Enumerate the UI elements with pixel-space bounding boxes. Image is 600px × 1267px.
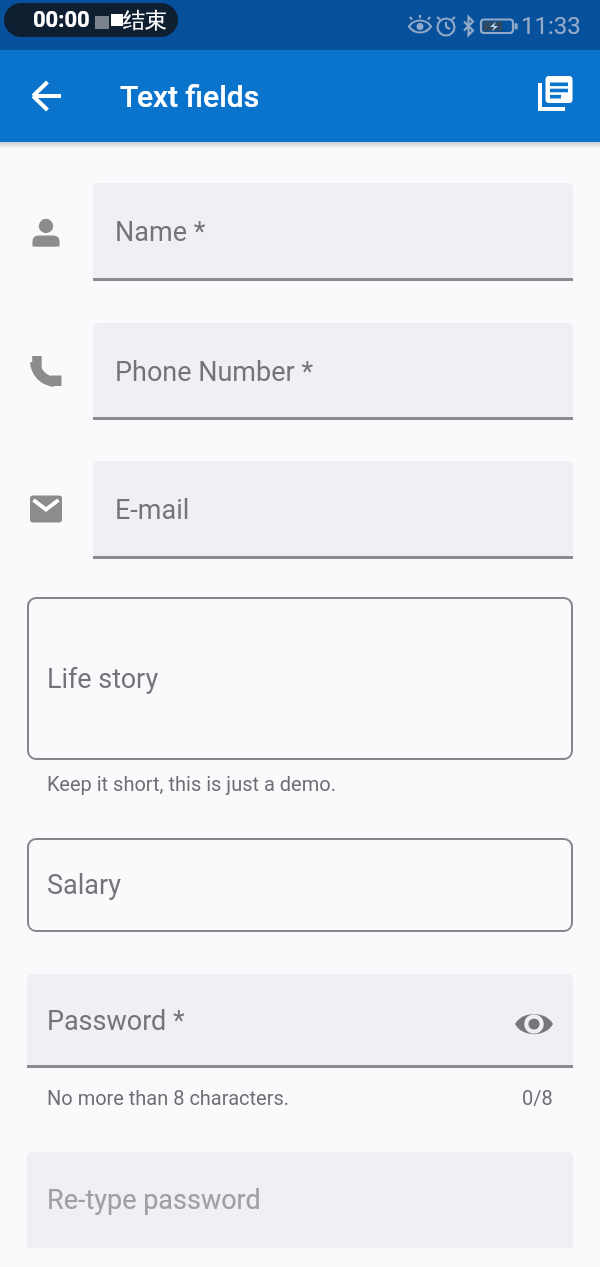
staticText: Text fields <box>120 79 260 114</box>
button[interactable]: Name * <box>93 183 573 281</box>
staticText: Phone Number * <box>115 356 314 388</box>
staticText: 结束 <box>123 7 167 35</box>
staticText: Re-type password <box>47 1184 261 1216</box>
button[interactable]: Phone Number * <box>93 323 573 420</box>
staticText: No more than 8 characters. <box>47 1086 290 1109</box>
button[interactable]: E-mail <box>93 461 573 559</box>
staticText: 0/8 <box>522 1086 553 1109</box>
button[interactable]: Life story <box>27 597 573 760</box>
button[interactable]: Password * <box>27 974 573 1068</box>
staticText: Password * <box>47 1005 185 1037</box>
button[interactable] <box>28 77 66 115</box>
staticText: Keep it short, this is just a demo. <box>47 772 336 795</box>
button[interactable] <box>536 76 576 116</box>
staticText: 00:00 <box>33 7 90 33</box>
staticText: Salary <box>47 869 122 901</box>
staticText: 11:33 <box>521 12 581 40</box>
staticText: Life story <box>47 663 159 695</box>
staticText: E-mail <box>115 494 190 526</box>
staticText: Name * <box>115 216 206 248</box>
button[interactable]: Re-type password <box>27 1152 573 1248</box>
button[interactable]: Salary <box>27 838 573 932</box>
